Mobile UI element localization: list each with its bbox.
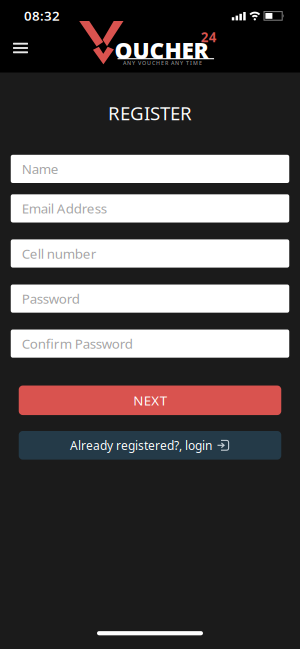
staticText: Already registered?, login bbox=[70, 437, 212, 453]
staticText: 08:32 bbox=[24, 7, 60, 24]
staticText: Password bbox=[22, 290, 80, 307]
staticText: A N Y V O U C H E R A N Y T I M E bbox=[123, 59, 202, 67]
staticText: Email Address bbox=[22, 199, 107, 217]
button[interactable]: Cell number bbox=[11, 239, 289, 268]
staticText: Name bbox=[22, 160, 59, 178]
staticText: NEXT bbox=[133, 391, 167, 409]
button[interactable]: Email Address bbox=[11, 194, 289, 222]
staticText: REGISTER bbox=[108, 101, 192, 125]
button[interactable]: Confirm Password bbox=[11, 329, 289, 358]
staticText: OUCHER bbox=[114, 35, 208, 65]
button[interactable]: Menu bbox=[7, 38, 33, 58]
button[interactable]: Name bbox=[11, 155, 289, 183]
staticText: 24 bbox=[201, 28, 217, 46]
button[interactable]: Password bbox=[11, 284, 289, 313]
staticText: Confirm Password bbox=[22, 335, 133, 352]
button[interactable]: Already registered?, login bbox=[19, 431, 281, 460]
staticText: Cell number bbox=[22, 245, 97, 262]
button[interactable]: NEXT bbox=[19, 386, 281, 415]
